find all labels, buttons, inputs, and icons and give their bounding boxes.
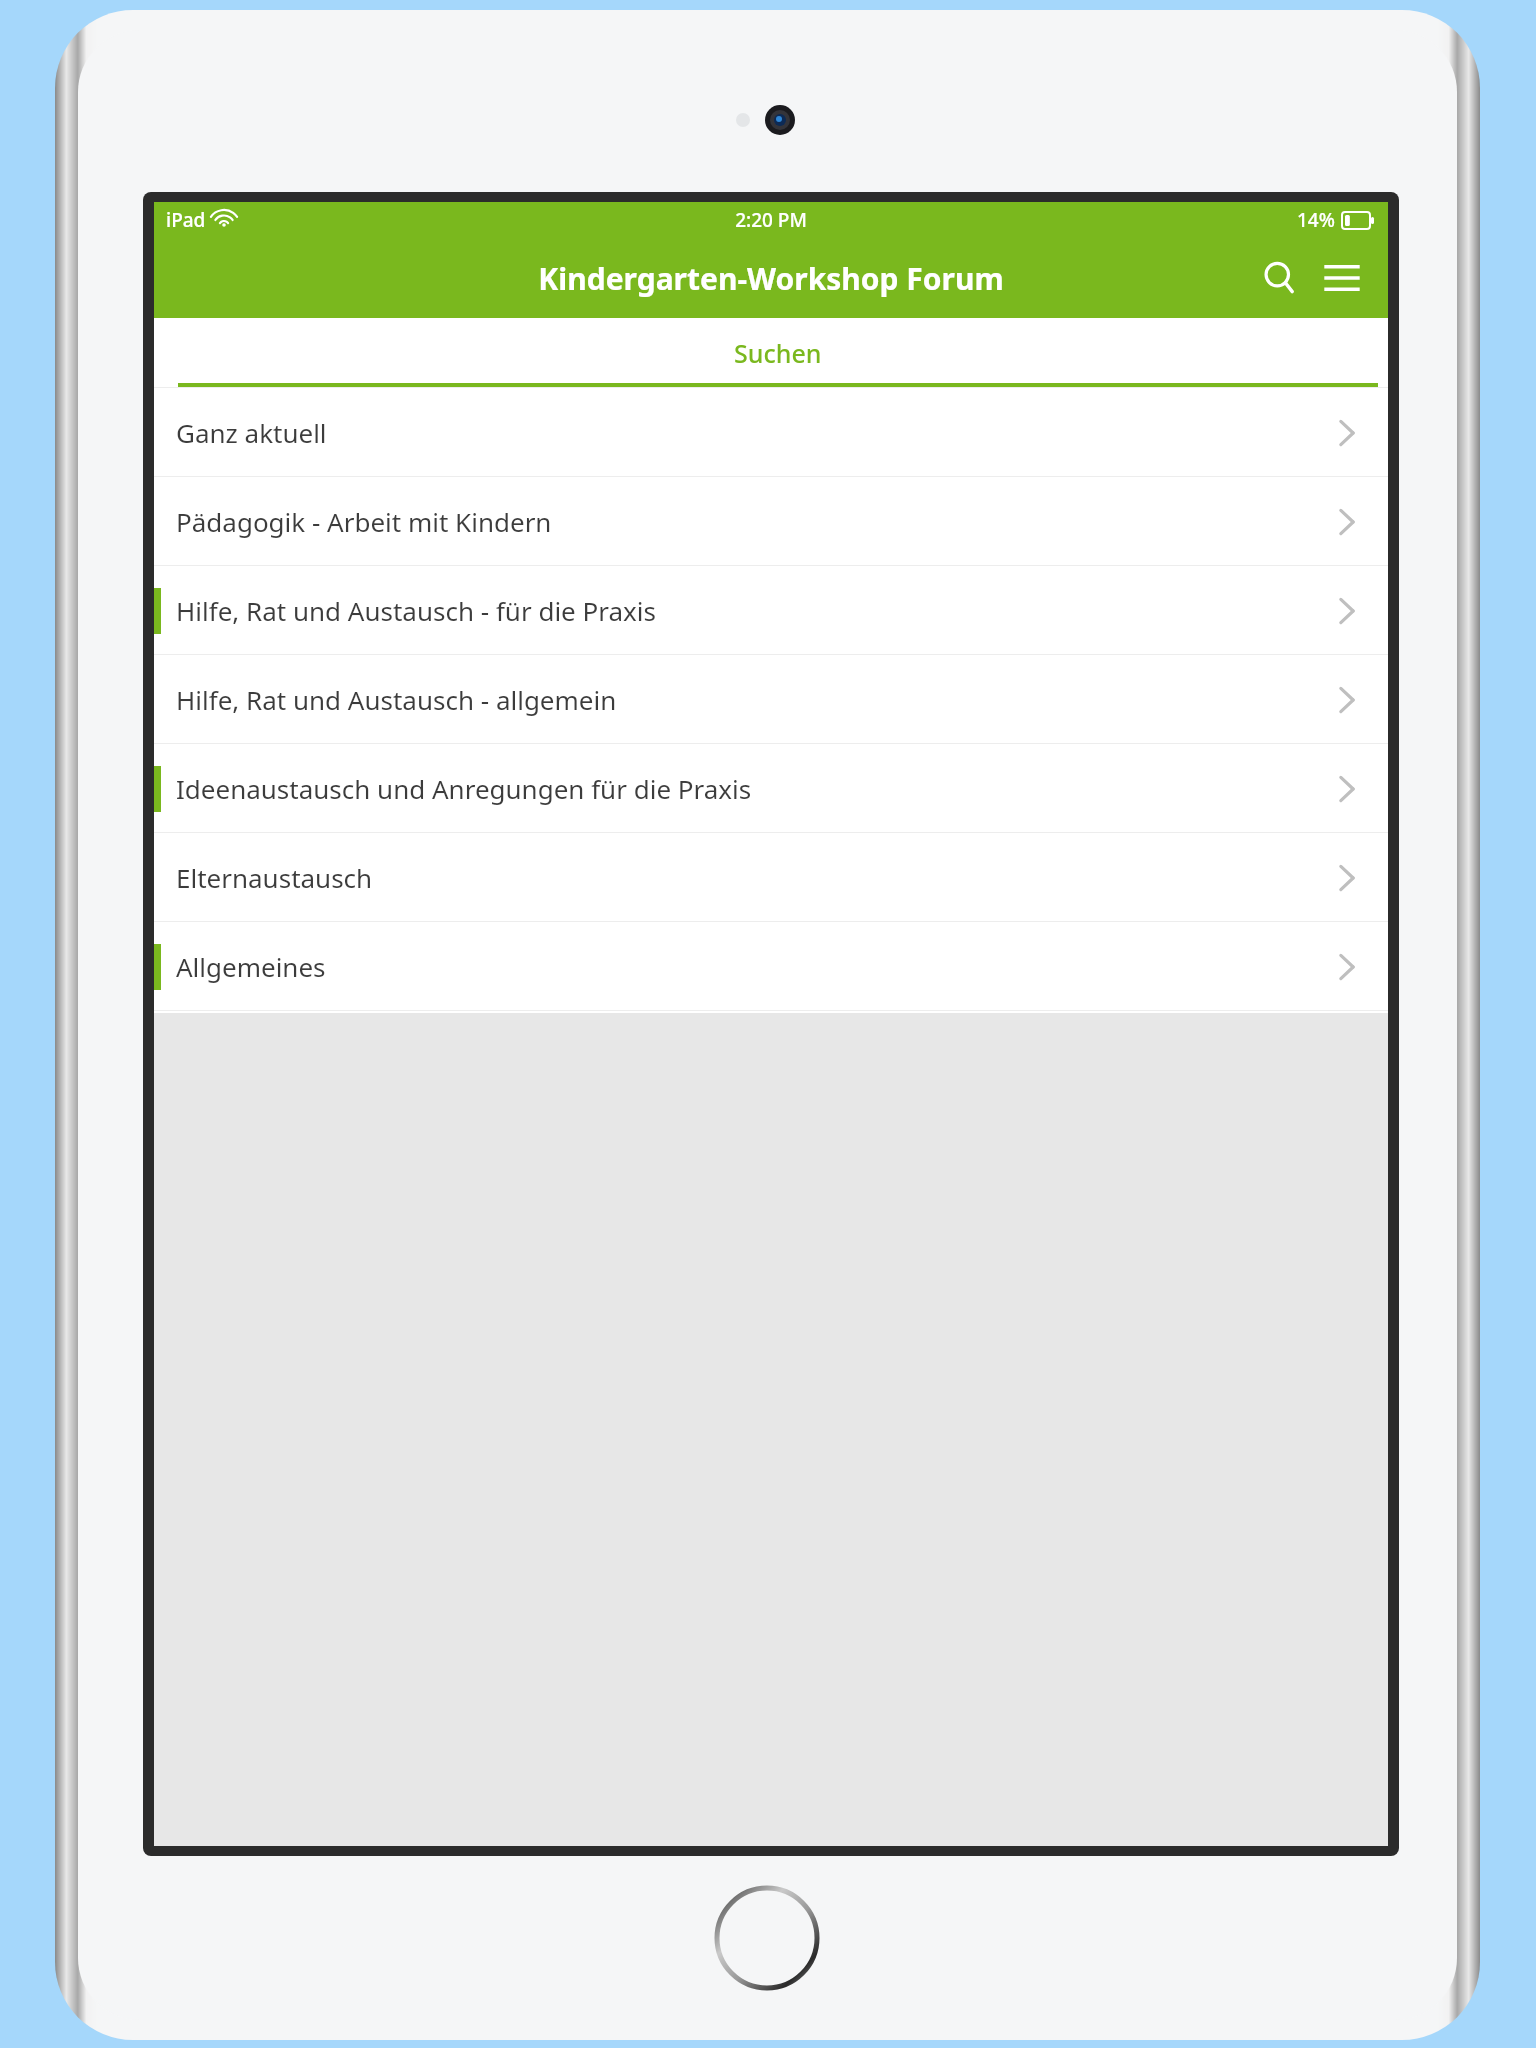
staticText: Hilfe, Rat und Austausch - allgemein xyxy=(176,682,617,717)
staticText: Kindergarten-Workshop Forum xyxy=(538,258,1004,299)
button[interactable]: Ganz aktuell xyxy=(154,388,1388,477)
button[interactable]: Suchen xyxy=(168,318,1388,388)
staticText: Suchen xyxy=(734,336,822,370)
staticText: Elternaustausch xyxy=(176,860,373,895)
button[interactable]: Hilfe, Rat und Austausch - allgemein xyxy=(154,655,1388,744)
staticText: Ganz aktuell xyxy=(176,415,327,450)
staticText: Allgemeines xyxy=(176,949,326,984)
button[interactable]: Hilfe, Rat und Austausch - für die Praxi… xyxy=(154,566,1388,655)
staticText: 14% xyxy=(1297,207,1335,233)
staticText: Hilfe, Rat und Austausch - für die Praxi… xyxy=(176,593,656,628)
staticText: Pädagogik - Arbeit mit Kindern xyxy=(176,504,552,539)
button[interactable]: Elternaustausch xyxy=(154,833,1388,922)
staticText: Ideenaustausch und Anregungen für die Pr… xyxy=(176,771,752,806)
button[interactable]: Menü xyxy=(1314,250,1370,306)
button[interactable]: Allgemeines xyxy=(154,922,1388,1011)
button[interactable]: Ideenaustausch und Anregungen für die Pr… xyxy=(154,744,1388,833)
staticText: 2:20 PM xyxy=(735,207,807,233)
button[interactable]: Suchen xyxy=(1252,250,1308,306)
staticText: iPad xyxy=(166,207,206,233)
button[interactable]: Pädagogik - Arbeit mit Kindern xyxy=(154,477,1388,566)
